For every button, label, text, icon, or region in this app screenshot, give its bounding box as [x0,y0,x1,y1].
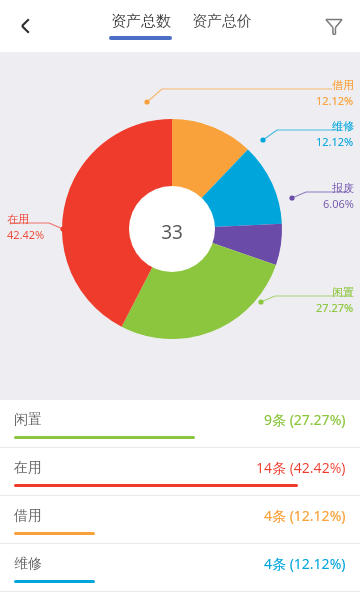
button[interactable]: Filter [308,0,360,52]
button[interactable]: 借用 [0,496,360,544]
staticText: 闲置 [332,285,354,299]
button[interactable]: 维修 [0,544,360,592]
staticText: 4条 (12.12%) [264,554,346,573]
staticText: 42.42% [7,227,45,242]
button[interactable]: 闲置 [0,400,360,448]
staticText: 维修 [332,119,354,133]
staticText: 4条 (12.12%) [264,506,346,525]
staticText: 维修 [14,555,42,573]
staticText: 资产总价 [192,12,252,31]
staticText: 在用 [14,459,42,477]
staticText: 6.06% [323,196,354,211]
staticText: 报废 [332,181,354,195]
staticText: 资产总数 [111,12,171,31]
staticText: 27.27% [316,300,354,315]
button[interactable]: Back [0,0,52,52]
button[interactable]: 在用 [0,448,360,496]
staticText: 借用 [14,507,42,525]
staticText: 14条 (42.42%) [256,458,346,477]
button[interactable]: 资产总价 [188,10,256,33]
staticText: 借用 [332,78,354,92]
staticText: 12.12% [316,93,354,108]
staticText: 在用 [7,212,29,226]
staticText: 33 [161,219,183,245]
button[interactable]: 资产总数 [105,10,176,42]
staticText: 闲置 [14,411,42,429]
staticText: 9条 (27.27%) [264,410,346,429]
staticText: 12.12% [316,134,354,149]
